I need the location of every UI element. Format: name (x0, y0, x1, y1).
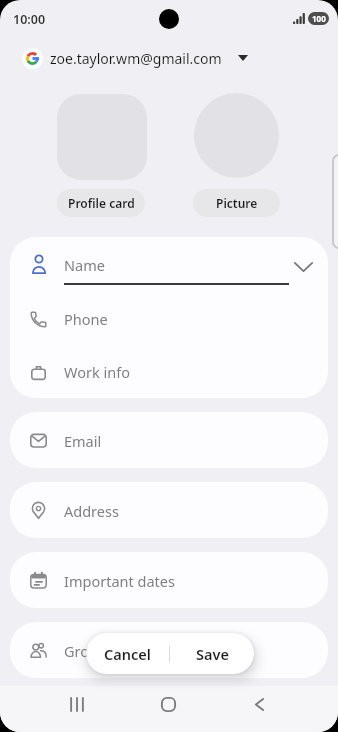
staticText: Important dates (64, 571, 175, 591)
button[interactable] (161, 697, 176, 712)
staticText: Picture (216, 195, 258, 211)
button[interactable]: Email (10, 412, 328, 468)
staticText: zoe.taylor.wm@gmail.com (50, 49, 222, 68)
button[interactable]: Profile card (57, 189, 145, 217)
staticText: 100 (312, 13, 326, 24)
button[interactable]: zoe.taylor.wm@gmail.com (22, 45, 248, 71)
button[interactable]: Picture (193, 189, 280, 217)
button[interactable] (57, 94, 147, 180)
button[interactable]: Work info (10, 345, 328, 398)
button[interactable]: Address (10, 482, 328, 538)
staticText: Groups (64, 641, 114, 661)
staticText: Profile card (68, 195, 135, 211)
button[interactable] (255, 698, 264, 711)
button[interactable] (70, 698, 84, 711)
staticText: Phone (64, 309, 108, 329)
button[interactable]: Phone (10, 291, 328, 345)
button[interactable]: Save (170, 633, 254, 674)
button[interactable]: Groups (10, 622, 328, 678)
staticText: Name (64, 255, 105, 275)
staticText: Address (64, 501, 119, 521)
button[interactable]: Cancel (86, 633, 169, 674)
staticText: Work info (64, 362, 130, 382)
button[interactable]: Important dates (10, 552, 328, 608)
button[interactable]: Name (10, 237, 328, 291)
staticText: Save (196, 644, 229, 664)
staticText: 10:00 (13, 11, 46, 28)
staticText: Email (64, 431, 102, 451)
button[interactable] (194, 93, 279, 178)
staticText: Cancel (104, 644, 151, 664)
